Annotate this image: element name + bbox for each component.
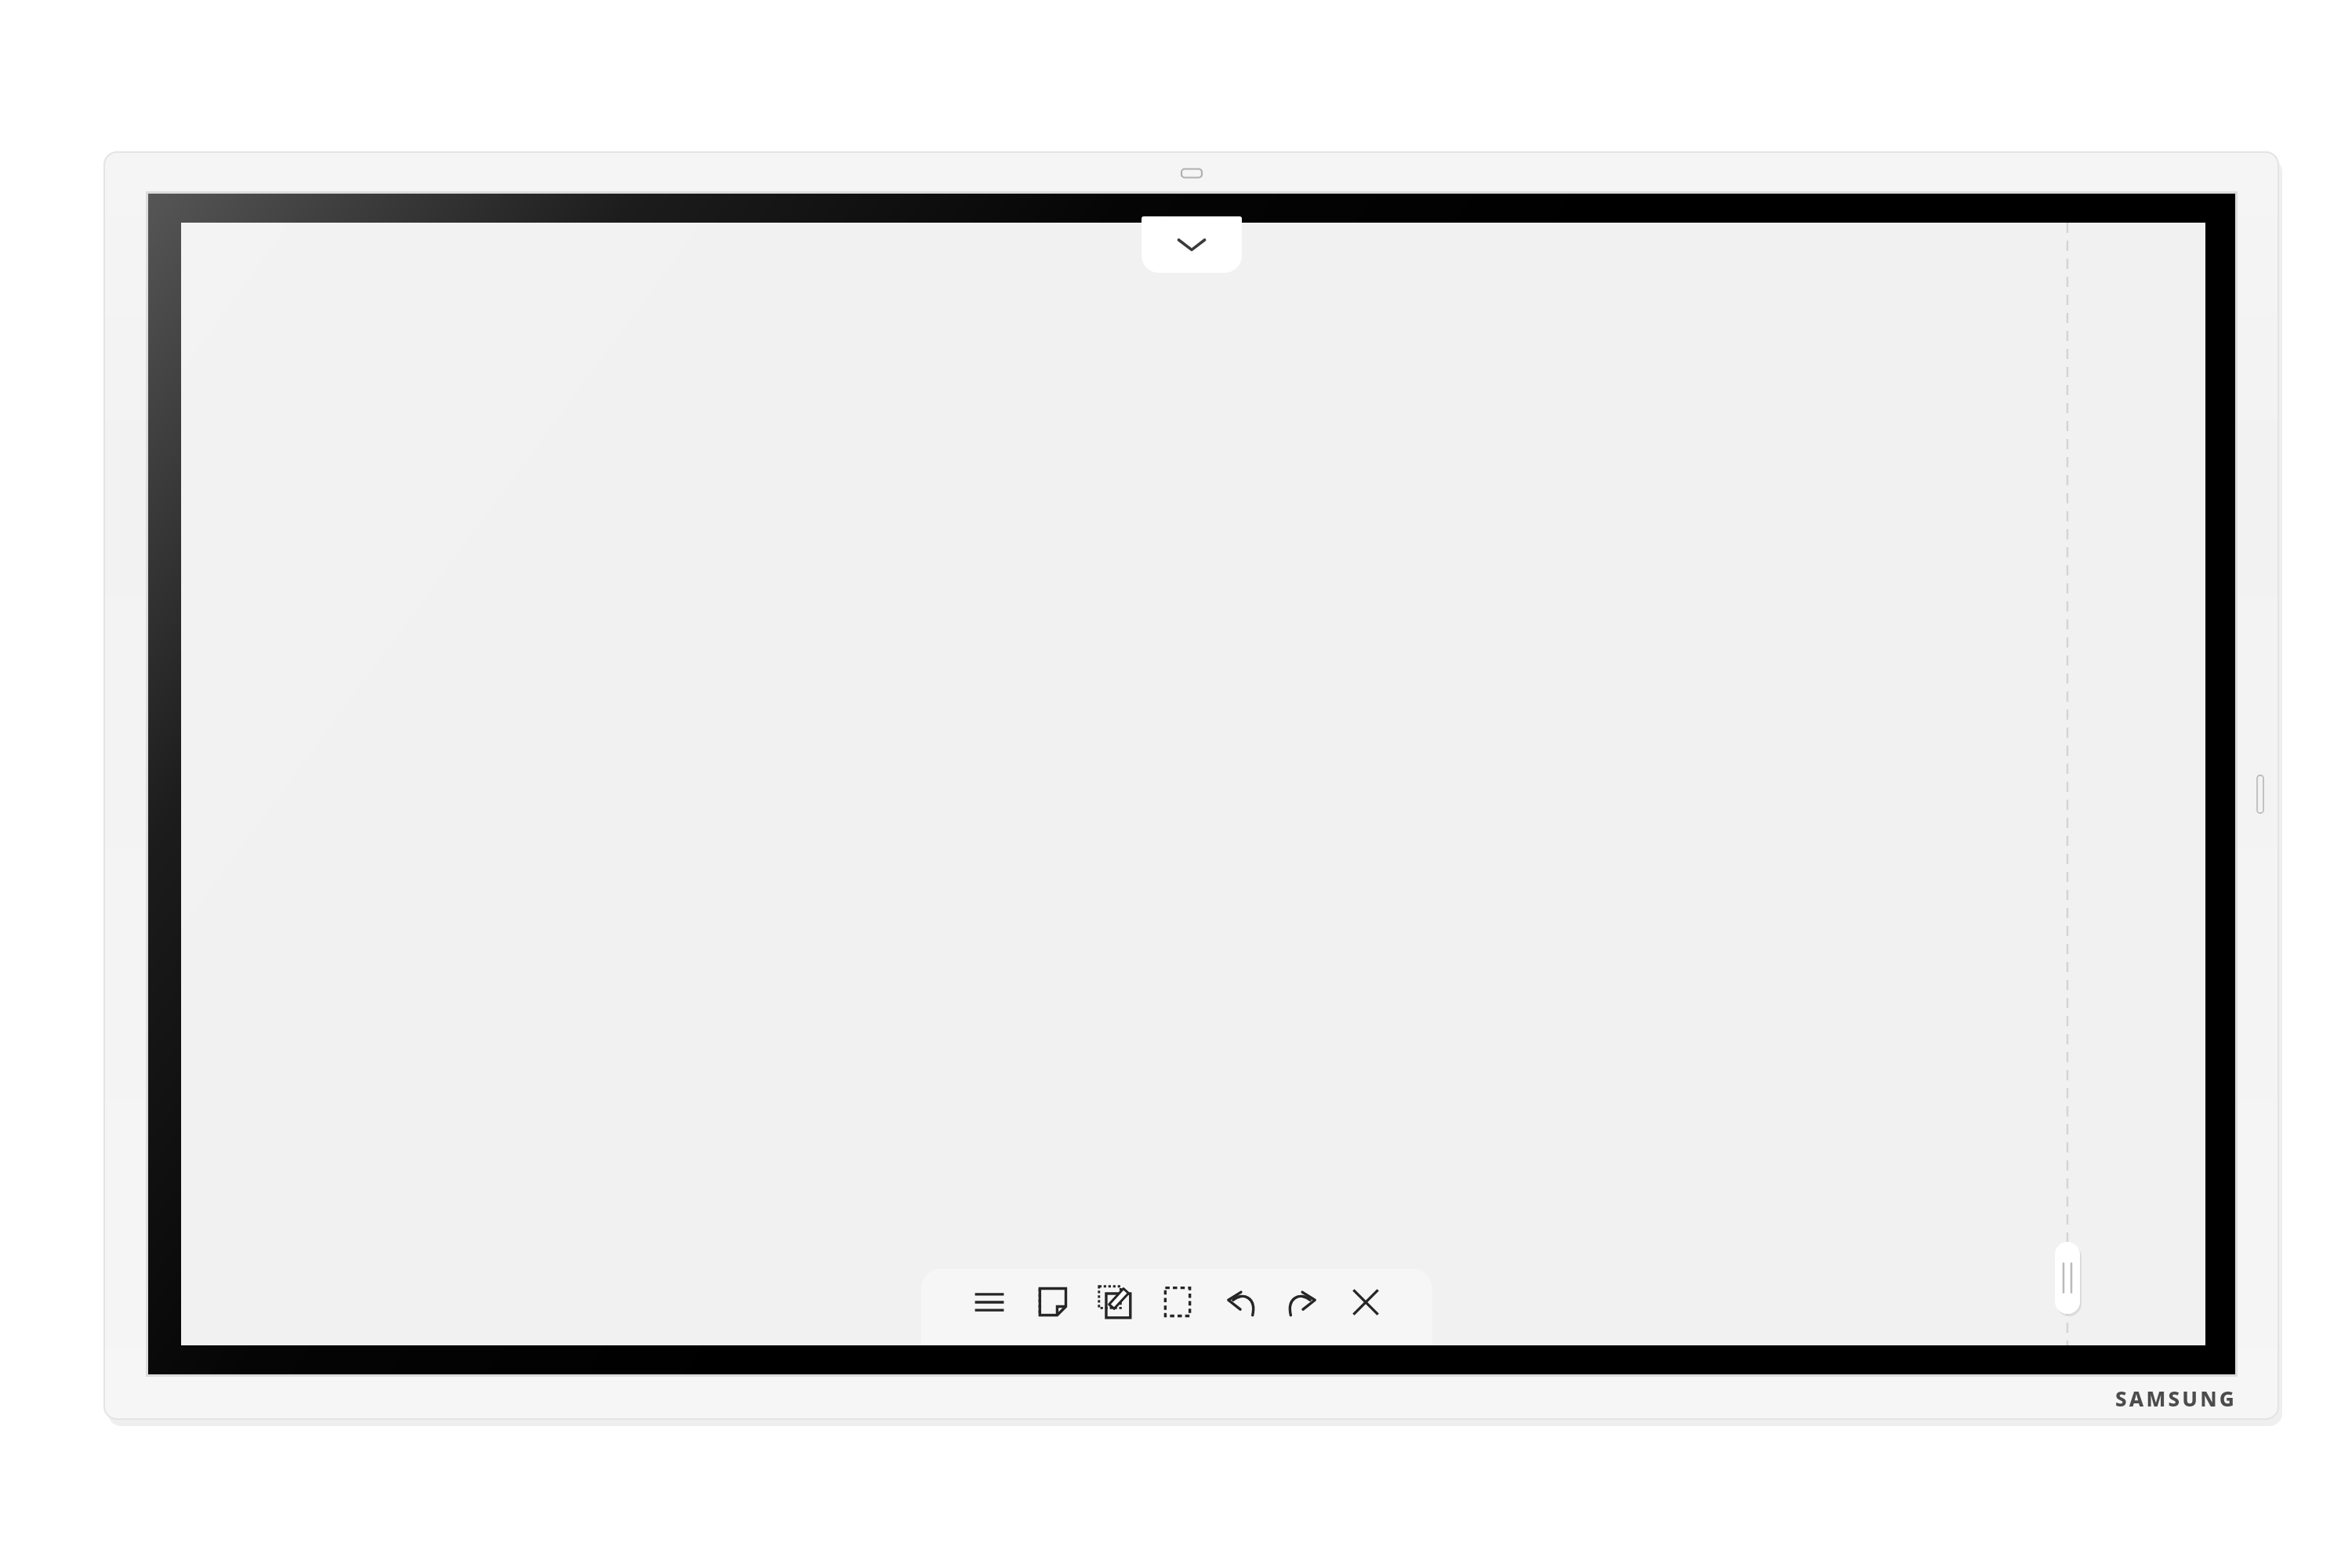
button[interactable]: Menu (960, 1272, 1019, 1332)
button[interactable]: Select (1148, 1272, 1207, 1332)
button[interactable]: New page (1022, 1272, 1082, 1332)
button[interactable]: Expand menu (1142, 216, 1242, 273)
button[interactable]: Undo (1210, 1272, 1270, 1332)
staticText: SAMSUNG (2115, 1385, 2237, 1412)
button[interactable]: Redo (1273, 1272, 1333, 1332)
button[interactable]: Close (1336, 1272, 1396, 1332)
button[interactable]: Edit page (1085, 1272, 1145, 1332)
